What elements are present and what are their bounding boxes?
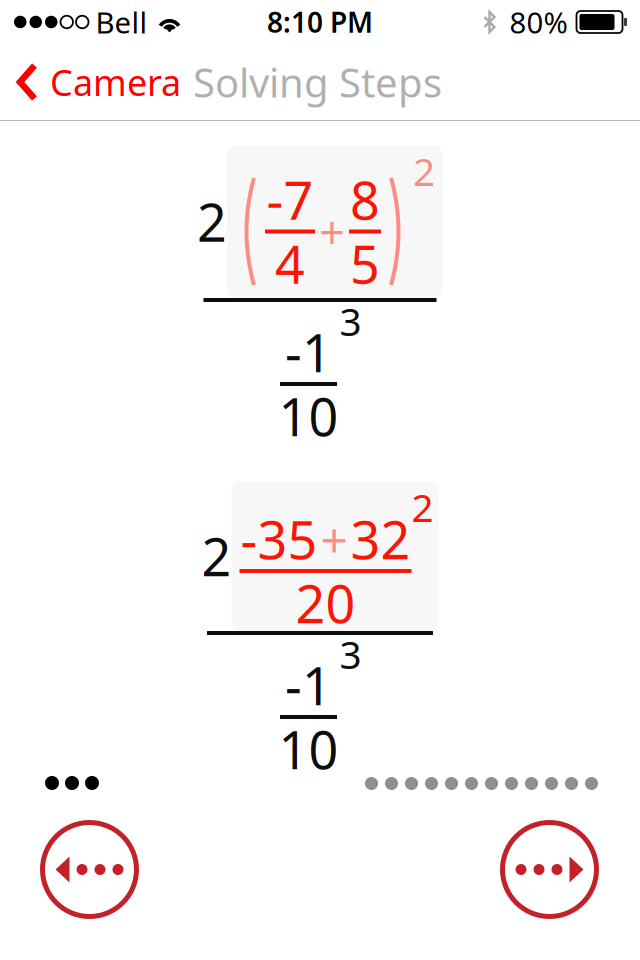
staticText: Solving Steps: [193, 55, 442, 108]
button[interactable]: Previous step: [40, 820, 139, 919]
button[interactable]: Next step: [500, 820, 599, 919]
staticText: 2: [411, 481, 433, 533]
staticText: -35: [240, 504, 317, 574]
staticText: 2: [197, 187, 227, 256]
staticText: 32: [350, 504, 410, 574]
button[interactable]: Camera: [0, 44, 189, 120]
staticText: 10: [278, 714, 338, 784]
staticText: 8:10 PM: [267, 3, 373, 41]
staticText: 80%: [509, 2, 567, 41]
staticText: Camera: [50, 58, 181, 106]
staticText: +: [319, 201, 345, 262]
staticText: 20: [295, 568, 355, 638]
staticText: 2: [413, 145, 435, 197]
staticText: 4: [275, 229, 305, 298]
staticText: 8: [350, 165, 380, 234]
staticText: -7: [266, 165, 313, 234]
staticText: 3: [339, 628, 361, 680]
staticText: +: [320, 507, 347, 571]
staticText: 3: [339, 295, 361, 347]
staticText: 10: [278, 381, 338, 451]
staticText: 2: [201, 521, 231, 591]
staticText: Bell: [95, 2, 147, 41]
staticText: -1: [285, 317, 332, 387]
staticText: 5: [350, 229, 380, 298]
staticText: -1: [285, 650, 332, 720]
